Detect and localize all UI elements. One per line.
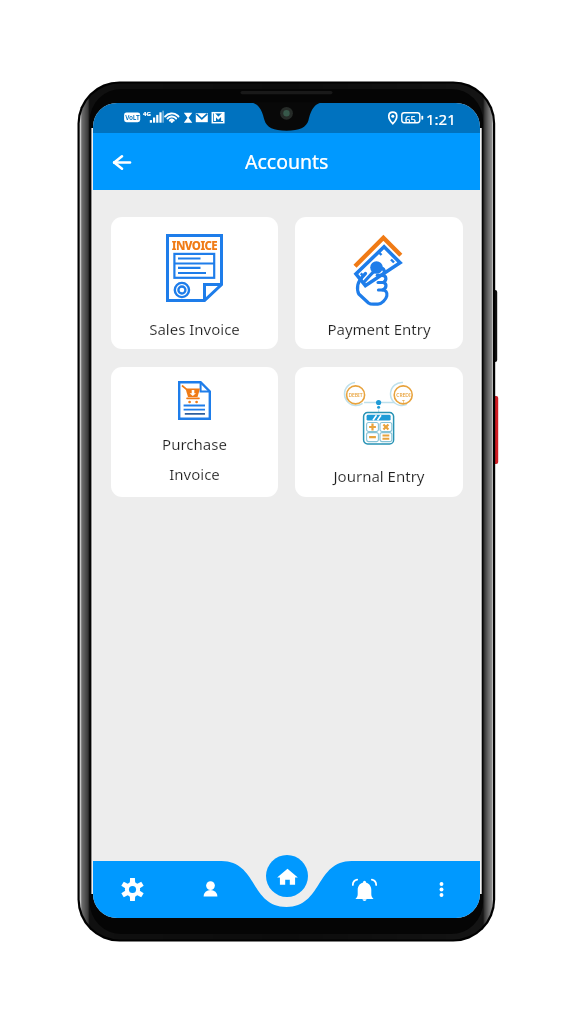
button[interactable]: Home: [266, 855, 308, 897]
staticText: Purchase Invoice: [111, 434, 278, 484]
staticText: Payment Entry: [295, 319, 463, 339]
button[interactable]: Notifications: [326, 861, 403, 918]
staticText: INVOICE: [171, 238, 218, 254]
staticText: CREDIT: [395, 392, 412, 406]
staticText: DEBIT: [347, 392, 364, 399]
button[interactable]: INVOICE: [111, 217, 278, 349]
staticText: Accounts: [245, 148, 329, 175]
button[interactable]: Payment Entry: [295, 217, 463, 349]
staticText: 1:21: [426, 109, 456, 129]
button[interactable]: More: [403, 861, 480, 918]
button[interactable]: Settings: [93, 861, 171, 918]
staticText: Sales Invoice: [111, 319, 278, 339]
button[interactable]: DEBIT: [295, 367, 463, 497]
staticText: Journal Entry: [295, 466, 463, 486]
button[interactable]: Purchase Invoice: [111, 367, 278, 497]
staticText: VoLTE: [125, 113, 140, 122]
staticText: 65: [405, 113, 416, 126]
button[interactable]: Back: [101, 142, 141, 182]
button[interactable]: Profile: [171, 861, 249, 918]
staticText: 4G: [143, 110, 151, 118]
